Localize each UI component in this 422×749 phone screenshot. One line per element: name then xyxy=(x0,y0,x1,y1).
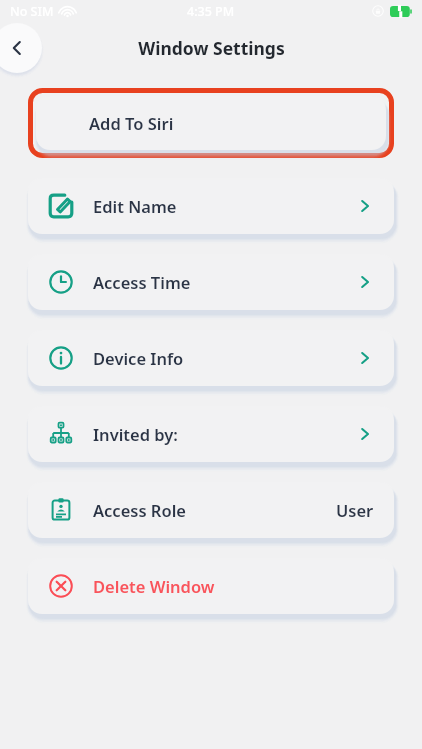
staticText: No SIM xyxy=(10,3,54,20)
button[interactable]: Access Time xyxy=(28,254,394,310)
button[interactable]: Delete Window xyxy=(28,558,394,614)
button[interactable]: Invited by: xyxy=(28,406,394,462)
button[interactable]: Access Role xyxy=(28,482,394,538)
staticText: Add To Siri xyxy=(89,112,174,134)
button[interactable]: Back xyxy=(0,23,42,73)
staticText: Access Time xyxy=(93,271,191,293)
button[interactable]: Add To Siri xyxy=(36,96,386,150)
staticText: Window Settings xyxy=(138,36,285,60)
button[interactable]: Device Info xyxy=(28,330,394,386)
staticText: Device Info xyxy=(93,347,184,369)
button[interactable]: Edit Name xyxy=(28,178,394,234)
staticText: Edit Name xyxy=(93,195,177,217)
staticText: 4:35 PM xyxy=(187,3,235,20)
staticText: Delete Window xyxy=(93,575,215,597)
staticText: User xyxy=(336,499,374,521)
staticText: Invited by: xyxy=(93,423,178,445)
staticText: Access Role xyxy=(93,499,186,521)
